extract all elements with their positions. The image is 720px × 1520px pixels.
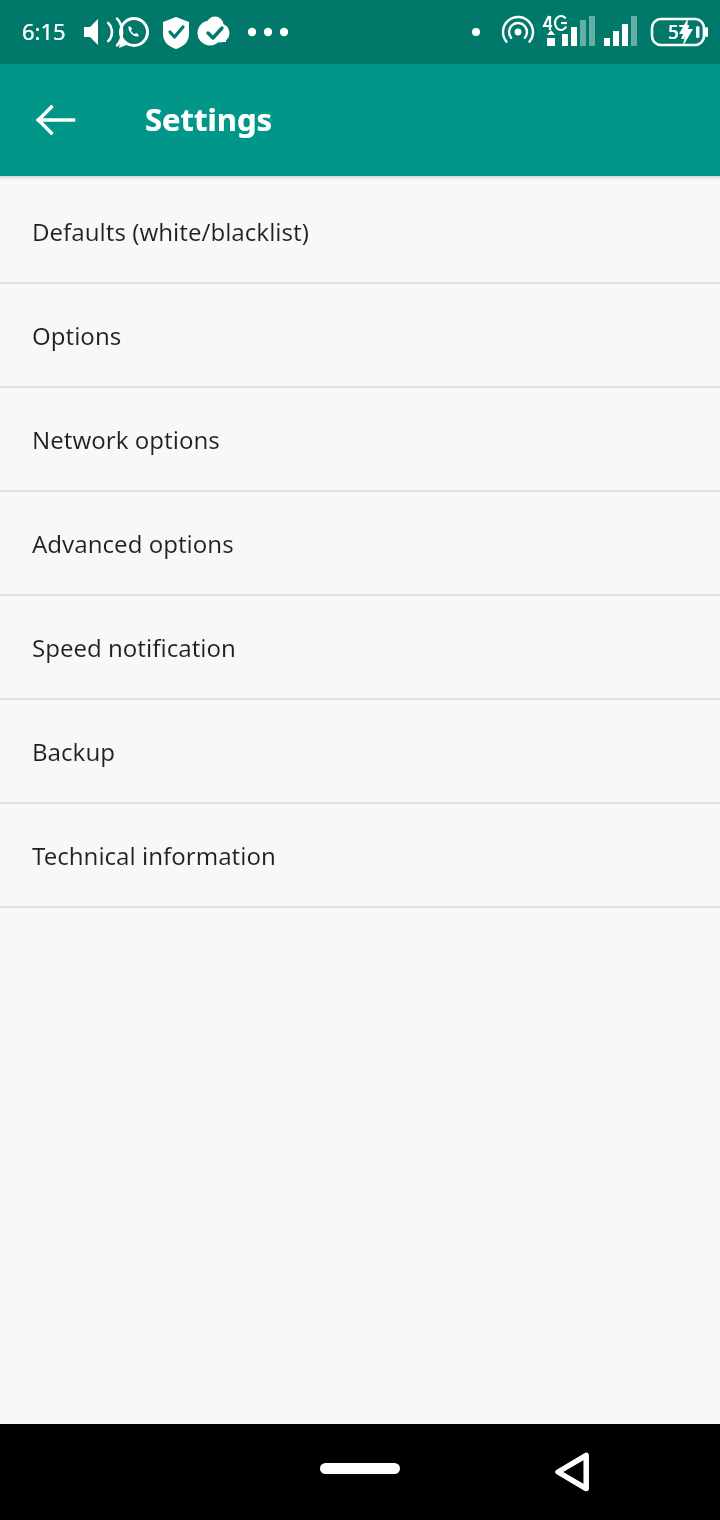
staticText: 6:15 [22,16,66,46]
button[interactable]: Backup [0,700,720,804]
staticText: Settings [145,98,273,140]
button[interactable]: Back [531,1444,615,1500]
staticText: Advanced options [32,527,234,560]
staticText: Technical information [32,839,276,872]
button[interactable]: Options [0,284,720,388]
button[interactable]: Network options [0,388,720,492]
button[interactable]: Back [12,76,100,164]
button[interactable]: Technical information [0,804,720,908]
button[interactable]: Defaults (white/blacklist) [0,180,720,284]
staticText: Network options [32,423,220,456]
staticText: Speed notification [32,631,236,664]
button[interactable]: Advanced options [0,492,720,596]
staticText: Options [32,319,122,352]
staticText: Backup [32,735,115,768]
staticText: 57 [668,19,690,45]
button[interactable]: Home [300,1452,420,1484]
staticText: Defaults (white/blacklist) [32,215,309,248]
button[interactable]: Speed notification [0,596,720,700]
